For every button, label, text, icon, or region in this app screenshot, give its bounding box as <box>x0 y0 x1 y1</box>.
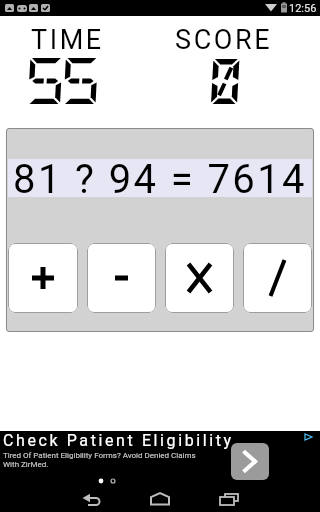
staticText: With ZirMed. <box>3 460 49 469</box>
staticText: 12:56 <box>289 2 317 15</box>
button[interactable] <box>231 443 269 480</box>
button[interactable] <box>165 243 234 313</box>
staticText: 81 ? 94 = 7614 <box>13 156 307 194</box>
button[interactable] <box>204 489 252 512</box>
button[interactable] <box>243 243 312 313</box>
button[interactable] <box>0 431 228 480</box>
button[interactable] <box>68 489 116 512</box>
staticText: SCORE <box>175 24 273 50</box>
button[interactable] <box>8 243 78 313</box>
staticText: Check Patient Eligibility <box>3 431 234 450</box>
button[interactable] <box>87 243 156 313</box>
button[interactable] <box>136 489 184 512</box>
staticText: Tired Of Patient Eligibility Forms? Avoi… <box>3 451 196 460</box>
staticText: TIME <box>31 24 104 50</box>
